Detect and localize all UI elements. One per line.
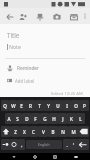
- staticText: K: [70, 116, 73, 122]
- button[interactable]: V: [38, 126, 48, 137]
- button[interactable]: W: [9, 100, 17, 111]
- staticText: X: [23, 129, 26, 135]
- button[interactable]: Symbols: [1, 139, 10, 150]
- staticText: V: [42, 129, 45, 135]
- staticText: Title: [7, 31, 20, 39]
- staticText: Note: [9, 43, 21, 50]
- button[interactable]: S: [13, 113, 22, 124]
- button[interactable]: T: [35, 100, 44, 111]
- button[interactable]: C: [29, 126, 38, 137]
- staticText: Z: [14, 129, 17, 135]
- button[interactable]: Back: [3, 10, 16, 23]
- button[interactable]: Recents: [49, 153, 61, 160]
- button[interactable]: A: [5, 113, 13, 124]
- button[interactable]: H: [49, 113, 58, 124]
- button[interactable]: ,: [18, 139, 25, 150]
- staticText: O: [74, 103, 78, 109]
- button[interactable]: J: [58, 113, 67, 124]
- staticText: E: [20, 103, 23, 109]
- staticText: T: [38, 103, 41, 109]
- button[interactable]: E: [17, 100, 26, 111]
- button[interactable]: F: [31, 113, 40, 124]
- staticText: S: [16, 116, 19, 122]
- button[interactable]: Note: [7, 42, 83, 51]
- button[interactable]: Title: [7, 30, 83, 40]
- button[interactable]: P: [80, 100, 89, 111]
- button[interactable]: Q: [1, 100, 9, 111]
- button[interactable]: X: [20, 126, 29, 137]
- staticText: F: [34, 116, 37, 122]
- staticText: ,: [21, 142, 23, 148]
- button[interactable]: M: [68, 126, 78, 137]
- staticText: Q: [3, 103, 7, 109]
- button[interactable]: Reminder: [7, 63, 83, 73]
- staticText: L: [79, 116, 82, 122]
- button[interactable]: Home: [29, 153, 41, 160]
- staticText: P: [83, 103, 86, 109]
- staticText: M: [71, 129, 76, 135]
- button[interactable]: Z: [11, 126, 20, 137]
- staticText: U: [56, 103, 60, 109]
- button[interactable]: Pin: [33, 10, 46, 23]
- staticText: .: [66, 142, 68, 148]
- button[interactable]: Enter: [77, 139, 89, 150]
- staticText: Y: [47, 103, 50, 109]
- staticText: R: [29, 103, 32, 109]
- button[interactable]: O: [71, 100, 80, 111]
- staticText: H: [52, 116, 56, 122]
- button[interactable]: Shift: [1, 126, 11, 137]
- button[interactable]: Add image: [50, 10, 63, 23]
- button[interactable]: Keyboard switcher: [70, 153, 82, 160]
- button[interactable]: G: [40, 113, 49, 124]
- button[interactable]: K: [67, 113, 76, 124]
- staticText: Reminder: [17, 65, 40, 72]
- button[interactable]: Back: [8, 153, 20, 160]
- button[interactable]: More options: [82, 10, 88, 23]
- staticText: A: [7, 116, 11, 122]
- button[interactable]: I: [62, 100, 71, 111]
- staticText: C: [32, 129, 35, 135]
- button[interactable]: U: [53, 100, 62, 111]
- staticText: N: [61, 129, 65, 135]
- staticText: B: [51, 129, 55, 135]
- button[interactable]: English: [26, 140, 62, 149]
- staticText: I: [66, 103, 68, 109]
- button[interactable]: Backspace: [78, 126, 89, 137]
- button[interactable]: N: [58, 126, 68, 137]
- button[interactable]: B: [48, 126, 58, 137]
- button[interactable]: R: [26, 100, 35, 111]
- button[interactable]: .: [63, 139, 70, 150]
- staticText: Add label: [15, 78, 35, 84]
- button[interactable]: Emoji: [10, 139, 18, 150]
- staticText: G: [43, 116, 47, 122]
- button[interactable]: Add label: [7, 76, 83, 85]
- staticText: Edited 10:26 AM: [51, 91, 83, 97]
- button[interactable]: Y: [44, 100, 53, 111]
- button[interactable]: Add collaborator: [16, 10, 29, 23]
- button[interactable]: D: [22, 113, 31, 124]
- staticText: W: [11, 103, 16, 109]
- staticText: J: [62, 116, 64, 122]
- button[interactable]: L: [76, 113, 85, 124]
- staticText: English: [38, 142, 50, 147]
- button[interactable]: Voice input: [70, 139, 77, 150]
- button[interactable]: Archive: [67, 10, 80, 23]
- staticText: D: [25, 116, 29, 122]
